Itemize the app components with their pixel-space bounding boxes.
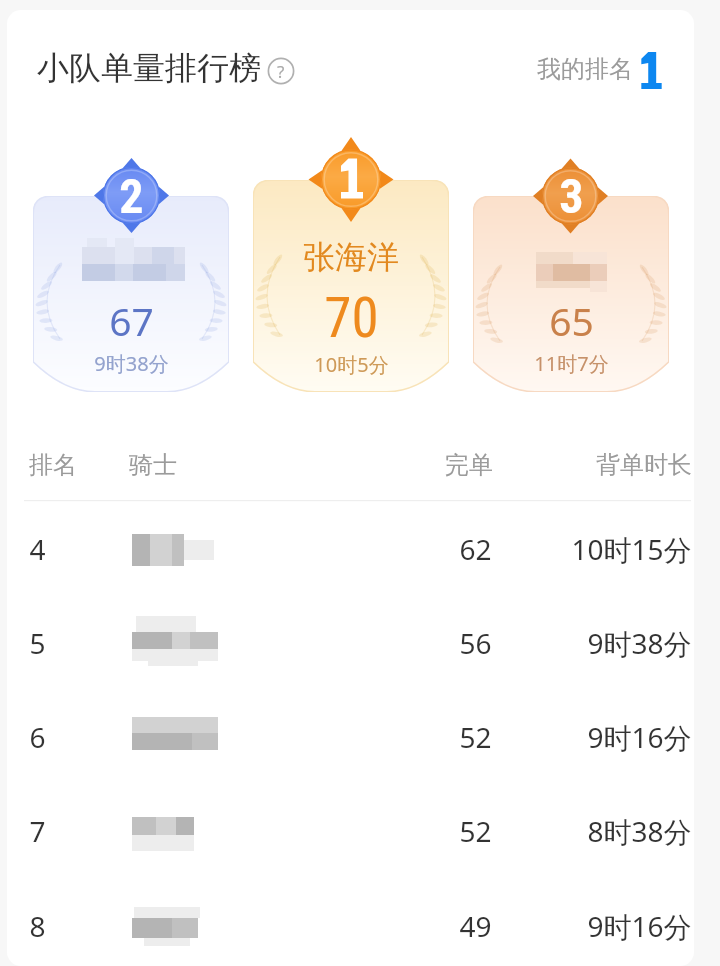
staticText: 62 xyxy=(459,530,492,568)
staticText: 3 xyxy=(559,168,584,224)
staticText: 9时16分 xyxy=(587,907,692,945)
button[interactable]: 8 xyxy=(24,879,694,966)
staticText: 2 xyxy=(119,168,144,224)
staticText: 4 xyxy=(29,530,46,568)
staticText: 5 xyxy=(29,624,46,662)
staticText: 背单时长 xyxy=(596,450,692,480)
staticText: 8 xyxy=(29,907,46,945)
staticText: 9时38分 xyxy=(94,350,169,377)
staticText: 56 xyxy=(459,624,492,662)
staticText: 张海洋 xyxy=(303,237,399,277)
button[interactable]: 65 xyxy=(473,196,669,392)
staticText: ? xyxy=(277,60,285,83)
button[interactable]: 说明 xyxy=(268,58,294,84)
staticText: 10时5分 xyxy=(314,351,389,378)
staticText: 6 xyxy=(29,718,46,756)
staticText: 11时7分 xyxy=(534,350,609,377)
staticText: 排名 xyxy=(29,450,77,480)
button[interactable]: 5 xyxy=(24,596,694,690)
staticText: 70 xyxy=(324,286,379,350)
staticText: 52 xyxy=(459,812,492,850)
button[interactable]: 张海洋 xyxy=(253,180,449,392)
staticText: 67 xyxy=(109,294,154,347)
button[interactable]: 6 xyxy=(24,690,694,784)
staticText: 10时15分 xyxy=(571,530,692,568)
staticText: 52 xyxy=(459,718,492,756)
staticText: 65 xyxy=(549,294,594,347)
staticText: 骑士 xyxy=(129,450,177,480)
staticText: 49 xyxy=(459,907,492,945)
staticText: 完单 xyxy=(445,450,493,480)
staticText: 8时38分 xyxy=(587,812,692,850)
button[interactable]: 67 xyxy=(33,196,229,392)
staticText: 小队单量排行榜 xyxy=(37,48,261,88)
staticText: 7 xyxy=(29,812,46,850)
button[interactable]: 7 xyxy=(24,784,694,878)
button[interactable]: 4 xyxy=(24,502,694,596)
staticText: 9时16分 xyxy=(587,718,692,756)
staticText: 9时38分 xyxy=(587,624,692,662)
staticText: 我的排名 xyxy=(537,54,633,84)
